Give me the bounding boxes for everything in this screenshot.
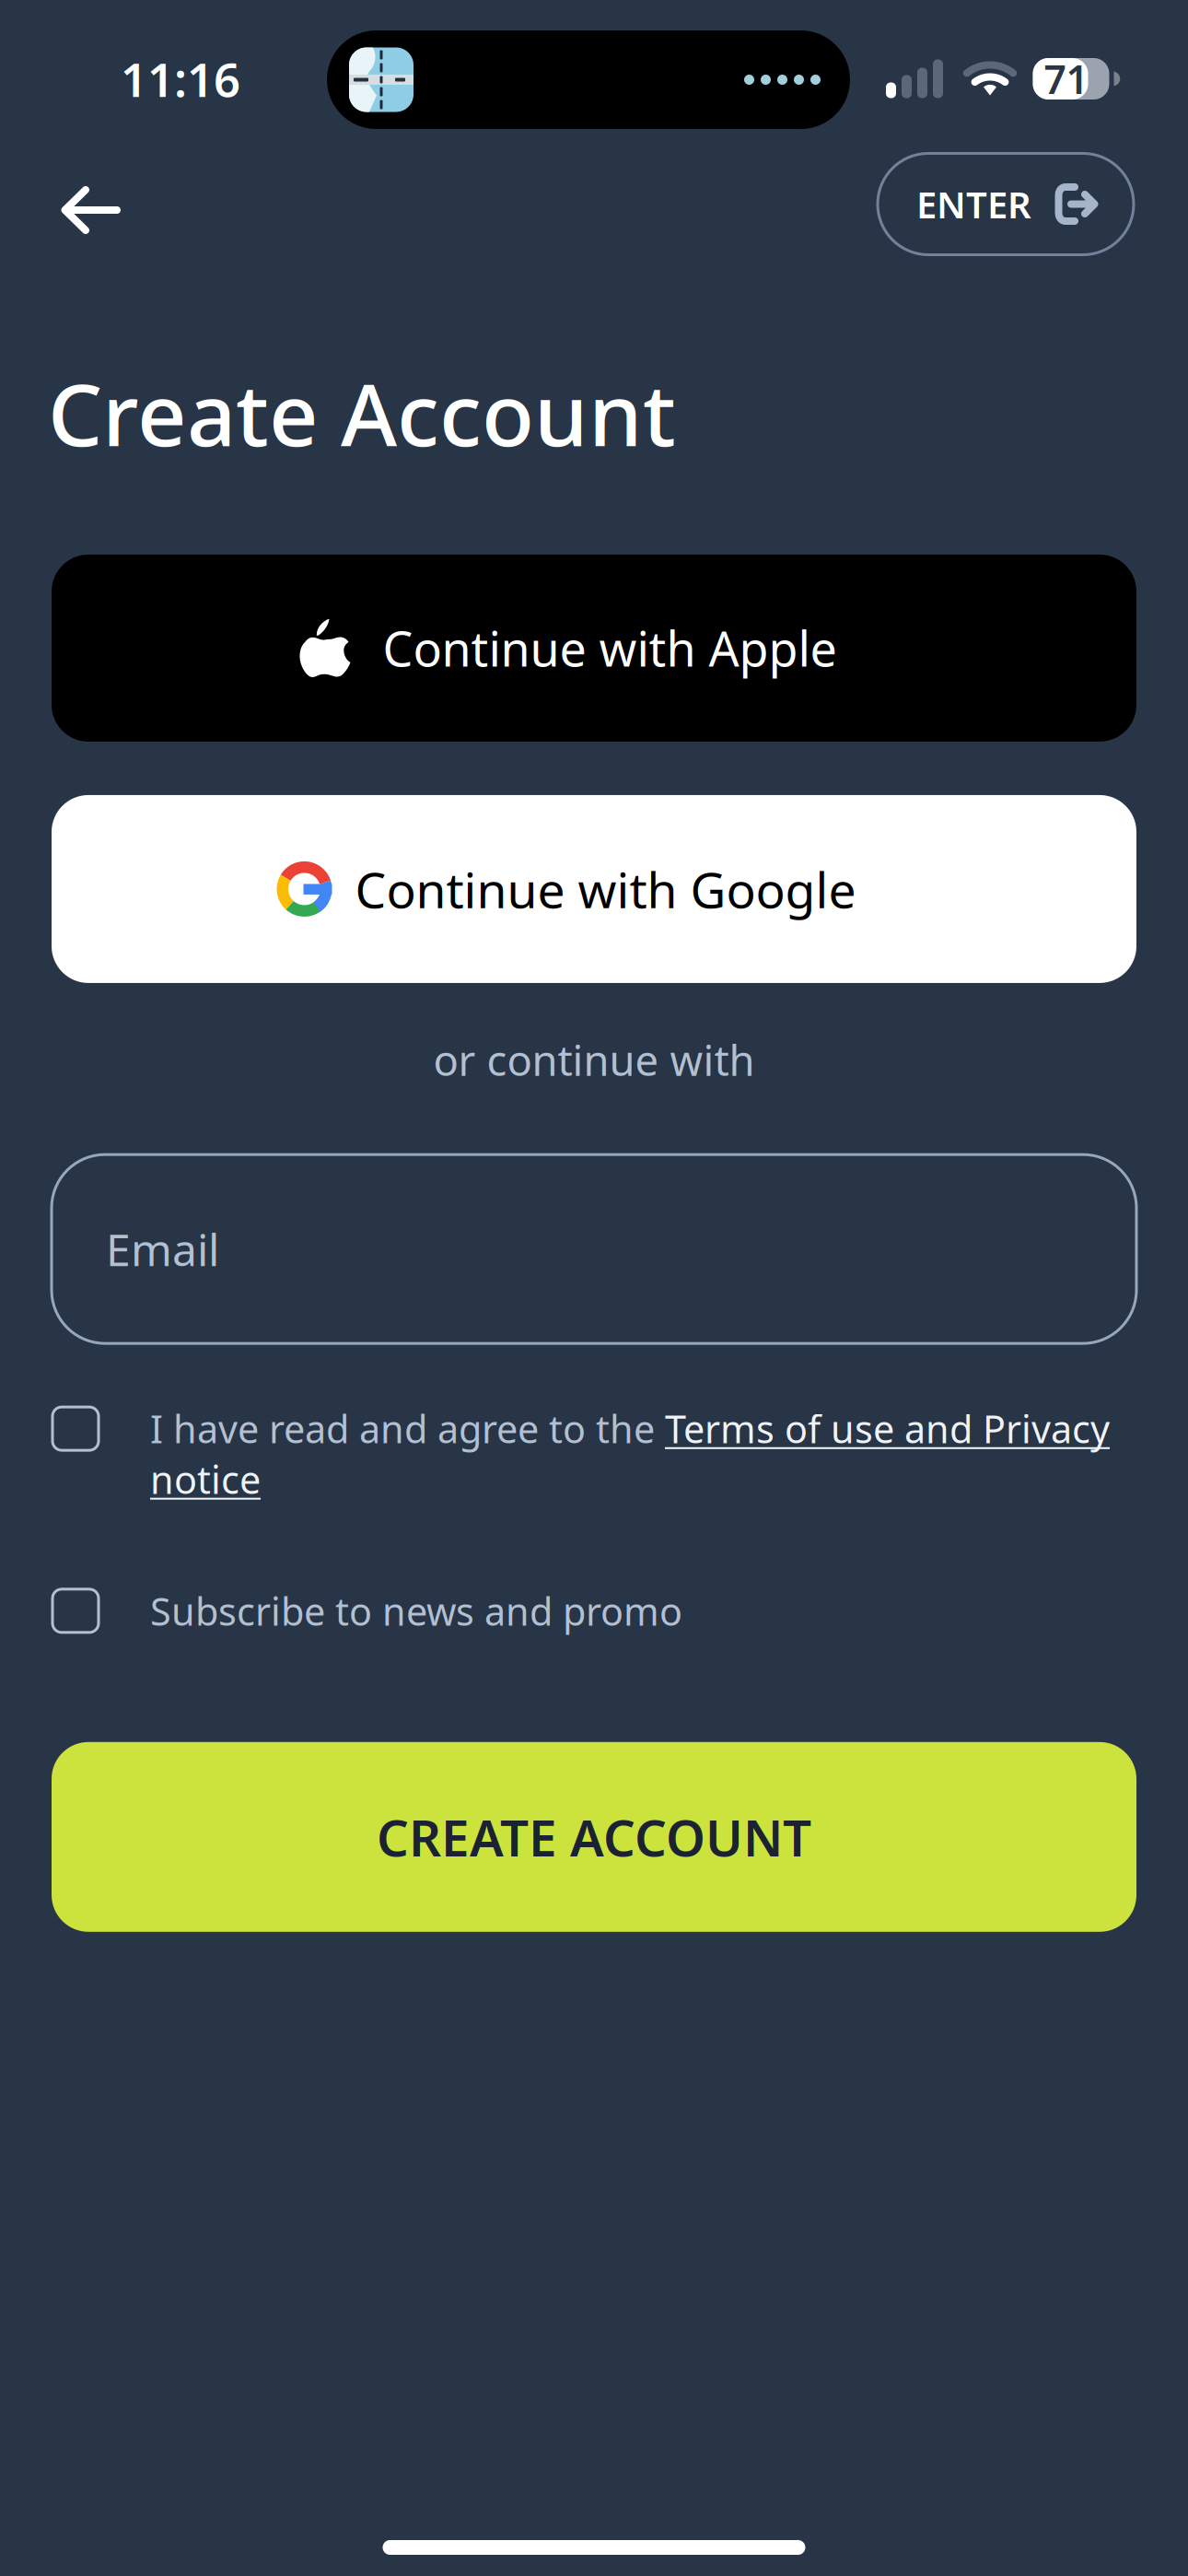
staticText: Create Account	[48, 356, 676, 470]
staticText: CREATE ACCOUNT	[377, 1803, 811, 1870]
button[interactable]: Back	[60, 152, 145, 256]
button[interactable]: I have read and agree to the Terms of us…	[52, 1403, 1144, 1504]
staticText: I have read and agree to the Terms of us…	[150, 1403, 1110, 1504]
staticText: Continue with Apple	[383, 616, 837, 680]
button[interactable]: Continue with Apple	[52, 555, 1136, 742]
staticText: Subscribe to news and promo	[150, 1585, 682, 1636]
staticText: Email	[106, 1220, 219, 1278]
button[interactable]: ENTER	[878, 153, 1134, 255]
staticText: or continue with	[433, 1032, 755, 1087]
staticText: 71	[1044, 53, 1088, 105]
staticText: Continue with Google	[355, 856, 856, 922]
button[interactable]: Subscribe to news and promo	[52, 1585, 1136, 1636]
staticText: ENTER	[916, 180, 1031, 228]
button[interactable]: Email	[52, 1155, 1136, 1343]
staticText: 11:16	[121, 48, 240, 110]
button[interactable]: CREATE ACCOUNT	[52, 1742, 1136, 1932]
button[interactable]: Continue with Google	[52, 795, 1136, 983]
